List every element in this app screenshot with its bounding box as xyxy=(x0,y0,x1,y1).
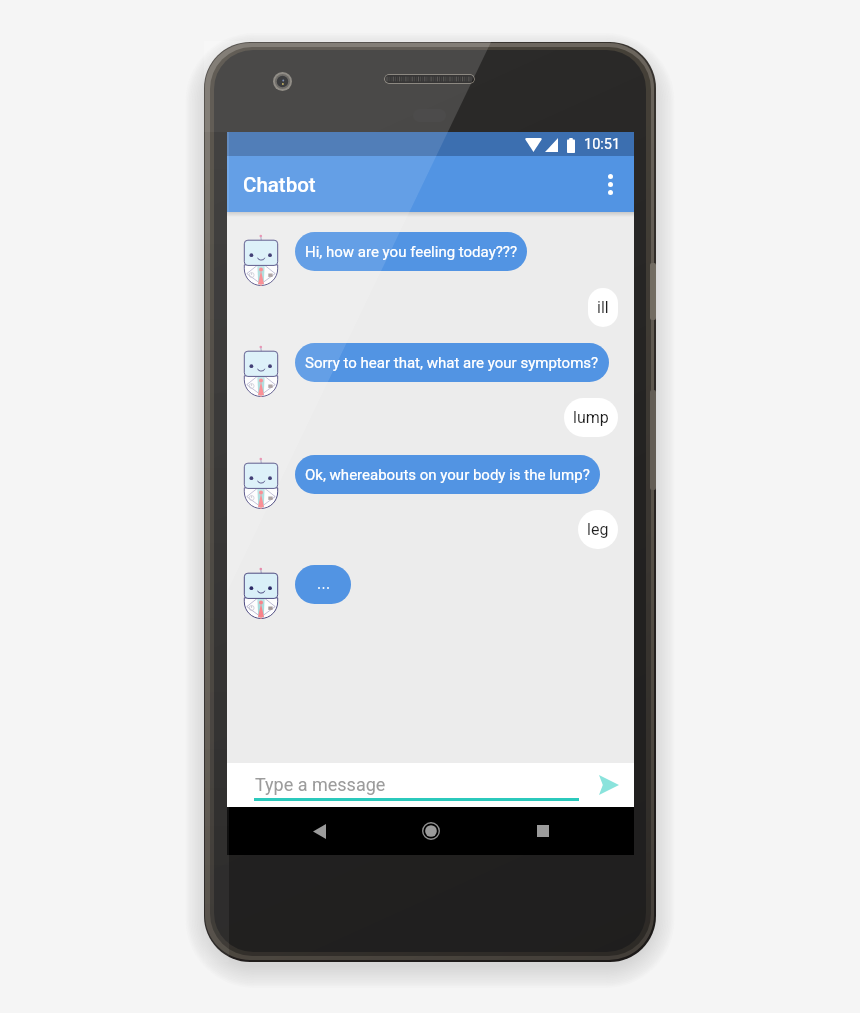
staticText: Chatbot xyxy=(243,173,316,197)
button[interactable]: ill xyxy=(588,288,618,327)
button[interactable]: leg xyxy=(578,510,618,549)
button[interactable]: lump xyxy=(564,398,618,437)
staticText: 10:51 xyxy=(584,136,621,153)
staticText: Sorry to hear that, what are your sympto… xyxy=(305,354,599,372)
button[interactable]: Ok, whereabouts on your body is the lump… xyxy=(295,455,600,494)
button[interactable]: Back xyxy=(295,807,343,855)
staticText: ill xyxy=(597,298,609,317)
button[interactable] xyxy=(295,565,351,604)
staticText: leg xyxy=(587,520,609,539)
button[interactable]: Hi, how are you feeling today??? xyxy=(295,232,527,271)
button[interactable]: Sorry to hear that, what are your sympto… xyxy=(295,343,609,382)
button[interactable]: Recents xyxy=(519,807,567,855)
button[interactable]: Home xyxy=(407,807,455,855)
staticText: Ok, whereabouts on your body is the lump… xyxy=(305,466,590,484)
button[interactable]: Send xyxy=(587,763,634,807)
staticText: lump xyxy=(573,408,609,427)
button[interactable]: More options xyxy=(586,156,634,212)
staticText: Type a message xyxy=(255,774,386,795)
staticText: Hi, how are you feeling today??? xyxy=(305,243,517,261)
button[interactable] xyxy=(253,765,580,805)
